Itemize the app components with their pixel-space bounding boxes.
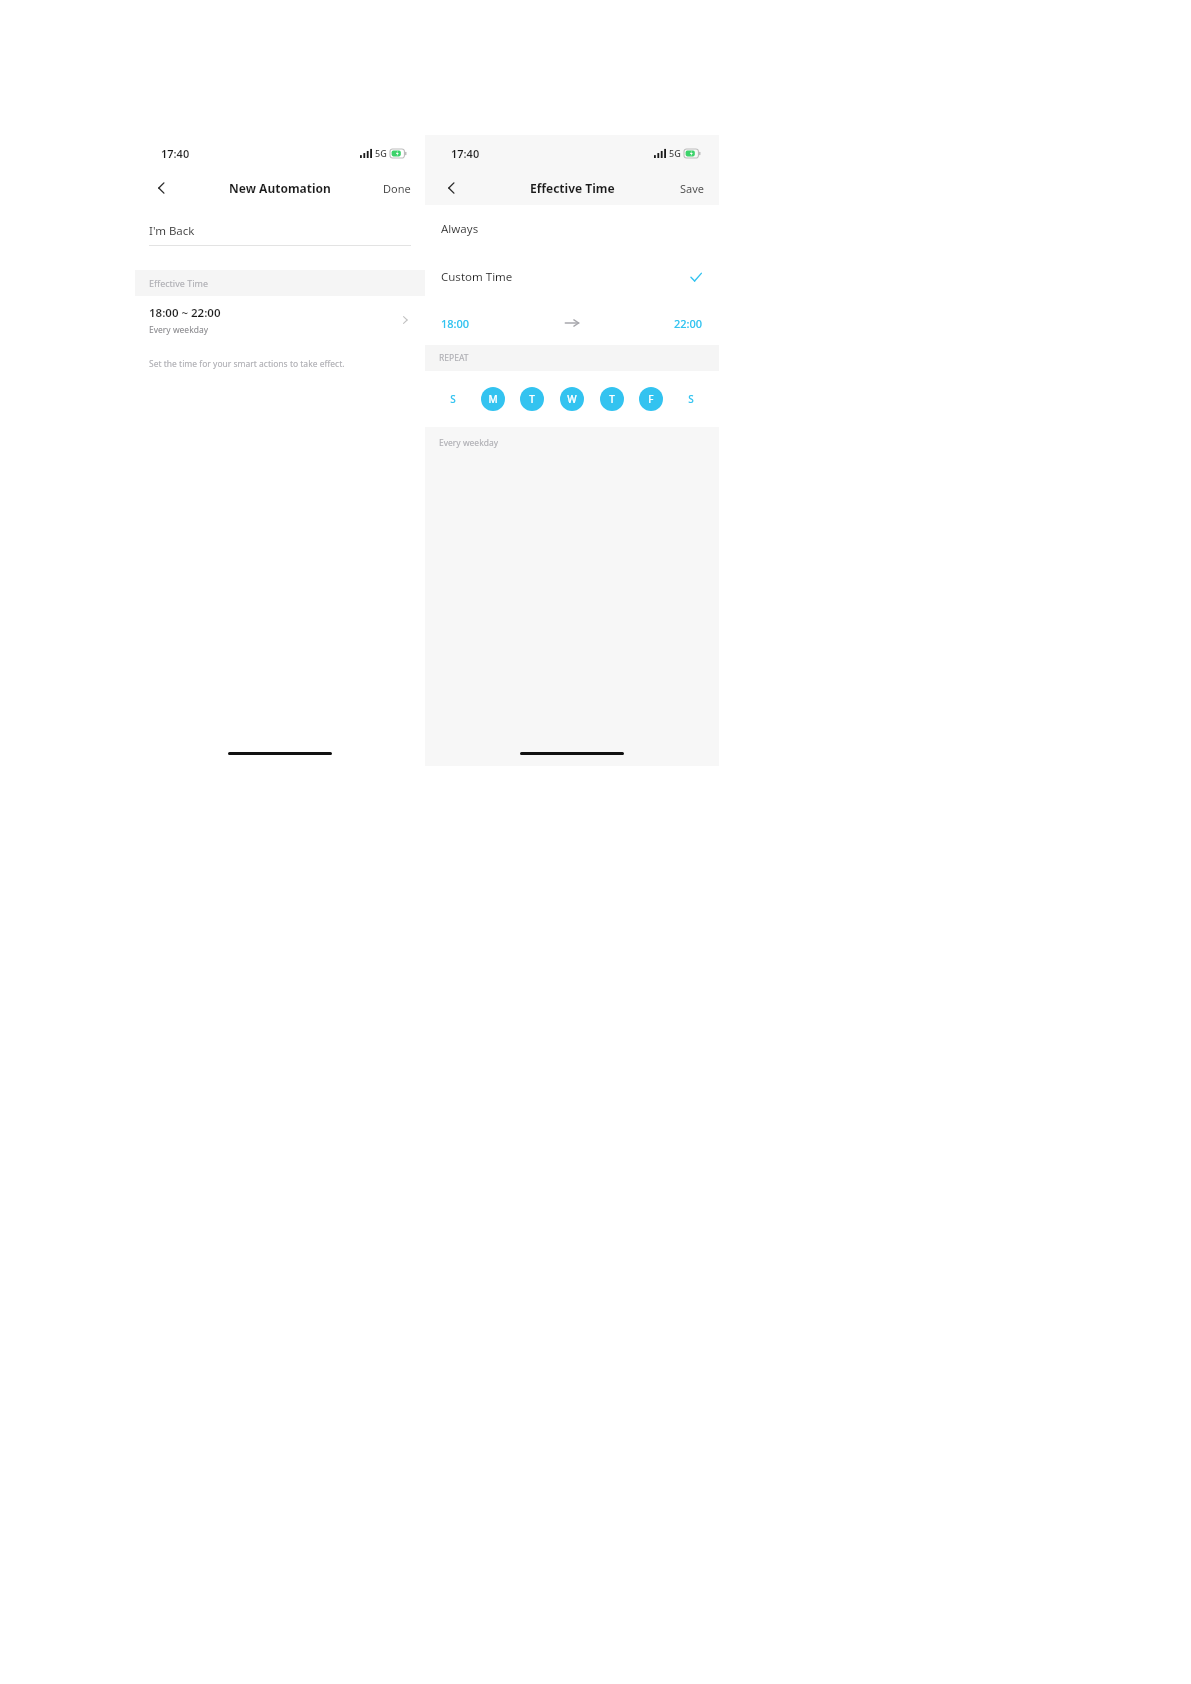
staticText: Every weekday [149,324,209,336]
staticText: 18:00 ~ 22:00 [149,305,221,321]
button[interactable]: 18:00 [441,316,564,331]
staticText: 5G [669,147,681,159]
button[interactable]: Back [437,173,467,203]
button[interactable]: Back [147,173,177,203]
staticText: F [648,392,654,406]
staticText: I'm Back [149,223,195,239]
button[interactable]: M [481,387,505,411]
staticText: 22:00 [674,316,703,331]
button[interactable]: Custom Time [425,253,719,301]
staticText: T [609,392,615,406]
staticText: 18:00 [441,316,470,331]
staticText: S [450,392,456,406]
staticText: New Automation [229,180,331,196]
button[interactable]: T [600,387,624,411]
staticText: 5G [375,147,387,159]
staticText: Set the time for your smart actions to t… [149,358,345,370]
staticText: W [567,392,577,406]
staticText: Custom Time [441,269,689,285]
staticText: Every weekday [439,437,499,449]
staticText: M [488,392,498,406]
staticText: Save [680,181,705,196]
staticText: Effective Time [530,180,615,196]
button[interactable]: Always [425,205,719,253]
button[interactable]: W [560,387,584,411]
button[interactable]: Done [379,177,415,200]
staticText: Always [441,221,479,237]
button[interactable]: Save [676,177,709,200]
staticText: 17:40 [451,146,480,161]
staticText: Effective Time [149,277,208,289]
button[interactable]: F [639,387,663,411]
staticText: REPEAT [439,352,469,364]
button[interactable]: S [441,387,465,411]
button[interactable]: T [520,387,544,411]
button[interactable]: 22:00 [580,316,703,331]
staticText: Done [383,181,411,196]
button[interactable]: 18:00 ~ 22:00 [135,296,425,344]
button[interactable]: S [679,387,703,411]
staticText: T [529,392,535,406]
staticText: 17:40 [161,146,190,161]
staticText: S [688,392,694,406]
